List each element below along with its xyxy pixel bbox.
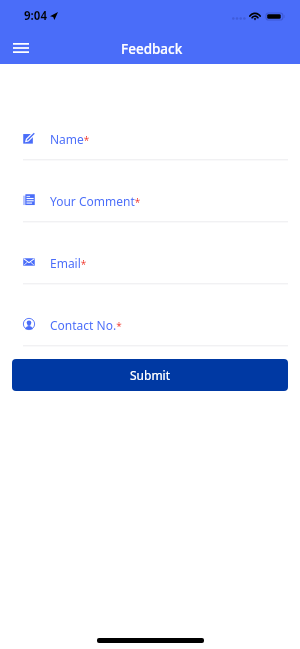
button[interactable]: Email* [0, 223, 300, 285]
staticText: Contact No.* [50, 317, 122, 333]
button[interactable]: Contact No.* [0, 285, 300, 347]
staticText: Email* [50, 255, 87, 271]
staticText: Submit [130, 367, 171, 383]
button[interactable]: Menu [4, 31, 38, 65]
button[interactable]: Your Comment* [0, 161, 300, 223]
staticText: 9:04 [24, 8, 47, 24]
button[interactable]: Name* [0, 99, 300, 161]
button[interactable]: Submit [12, 359, 288, 391]
staticText: Feedback [121, 40, 183, 58]
staticText: Your Comment* [50, 193, 141, 209]
staticText: Name* [50, 131, 90, 147]
